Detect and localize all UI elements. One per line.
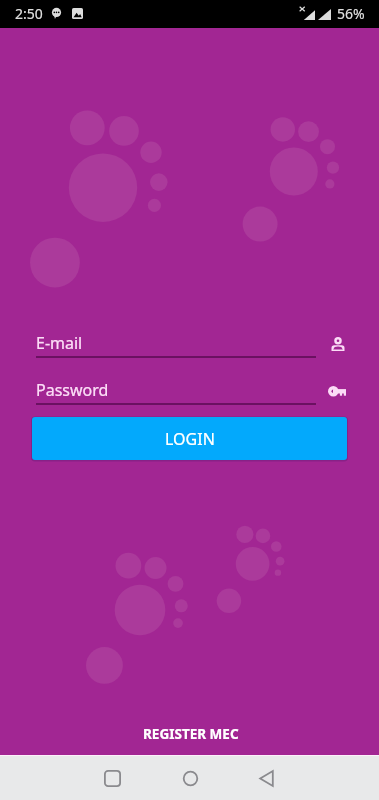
staticText: E-mail [36,332,83,354]
button[interactable]: Back [242,756,290,800]
button[interactable]: REGISTER MEC [123,720,259,748]
button[interactable]: LOGIN [32,417,347,460]
staticText: REGISTER MEC [143,725,239,743]
staticText: 2:50 [15,4,43,23]
button[interactable]: Home [166,756,214,800]
staticText: LOGIN [165,428,215,450]
staticText: Password [36,379,109,401]
button[interactable]: Recents [88,756,136,800]
other: Account [331,337,345,351]
button[interactable]: E-mail [0,326,379,358]
other: Password [328,386,346,397]
button[interactable]: Password [0,373,379,405]
staticText: 56% [337,4,365,23]
